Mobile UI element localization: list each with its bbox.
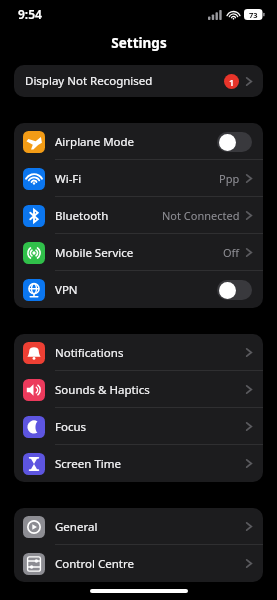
button[interactable]: VPN <box>14 271 263 308</box>
staticText: Screen Time <box>55 456 122 472</box>
staticText: 73 <box>249 10 258 20</box>
staticText: Settings <box>111 34 167 52</box>
staticText: Sounds & Haptics <box>55 382 150 398</box>
button[interactable]: Bluetooth <box>14 197 263 234</box>
button[interactable]: Wi-Fi <box>14 160 263 197</box>
staticText: 1 <box>229 76 235 88</box>
button[interactable]: Notifications <box>14 334 263 371</box>
staticText: Mobile Service <box>55 245 134 261</box>
staticText: Airplane Mode <box>55 134 135 150</box>
staticText: General <box>55 519 98 535</box>
staticText: Notifications <box>55 345 124 361</box>
button[interactable]: Control Centre <box>14 545 263 582</box>
button[interactable]: Toggle <box>217 280 252 300</box>
staticText: Control Centre <box>55 556 134 572</box>
staticText: 9:54 <box>18 6 42 22</box>
staticText: Off <box>223 245 240 260</box>
staticText: VPN <box>55 282 78 298</box>
button[interactable]: Toggle <box>217 132 252 152</box>
button[interactable]: Airplane Mode <box>14 123 263 160</box>
staticText: Not Connected <box>162 208 240 223</box>
staticText: Wi-Fi <box>55 171 82 187</box>
button[interactable]: General <box>14 508 263 545</box>
button[interactable]: Screen Time <box>14 445 263 482</box>
button[interactable]: Mobile Service <box>14 234 263 271</box>
button[interactable]: Display Not Recognised <box>14 65 263 97</box>
button[interactable]: Sounds & Haptics <box>14 371 263 408</box>
button[interactable]: Focus <box>14 408 263 445</box>
staticText: Ppp <box>219 171 240 186</box>
staticText: Bluetooth <box>55 208 109 224</box>
staticText: Focus <box>55 419 87 435</box>
staticText: Display Not Recognised <box>25 73 153 89</box>
